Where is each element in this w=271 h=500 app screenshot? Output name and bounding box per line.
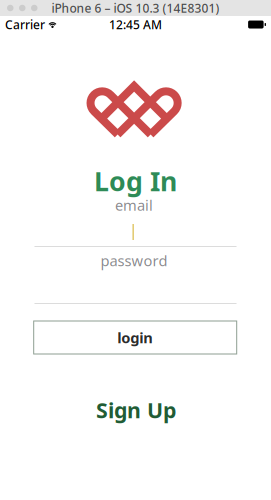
staticText: 12:45 AM [109,16,162,32]
button[interactable]: Sign Up [86,390,186,430]
staticText: Log In [94,163,177,199]
staticText: iPhone 6 – iOS 10.3 (14E8301) [51,0,219,16]
staticText: Sign Up [96,396,176,424]
staticText: Carrier [5,16,45,32]
staticText: password [100,251,167,270]
staticText: login [117,328,153,347]
button[interactable]: login [34,321,237,354]
staticText: email [115,195,153,215]
